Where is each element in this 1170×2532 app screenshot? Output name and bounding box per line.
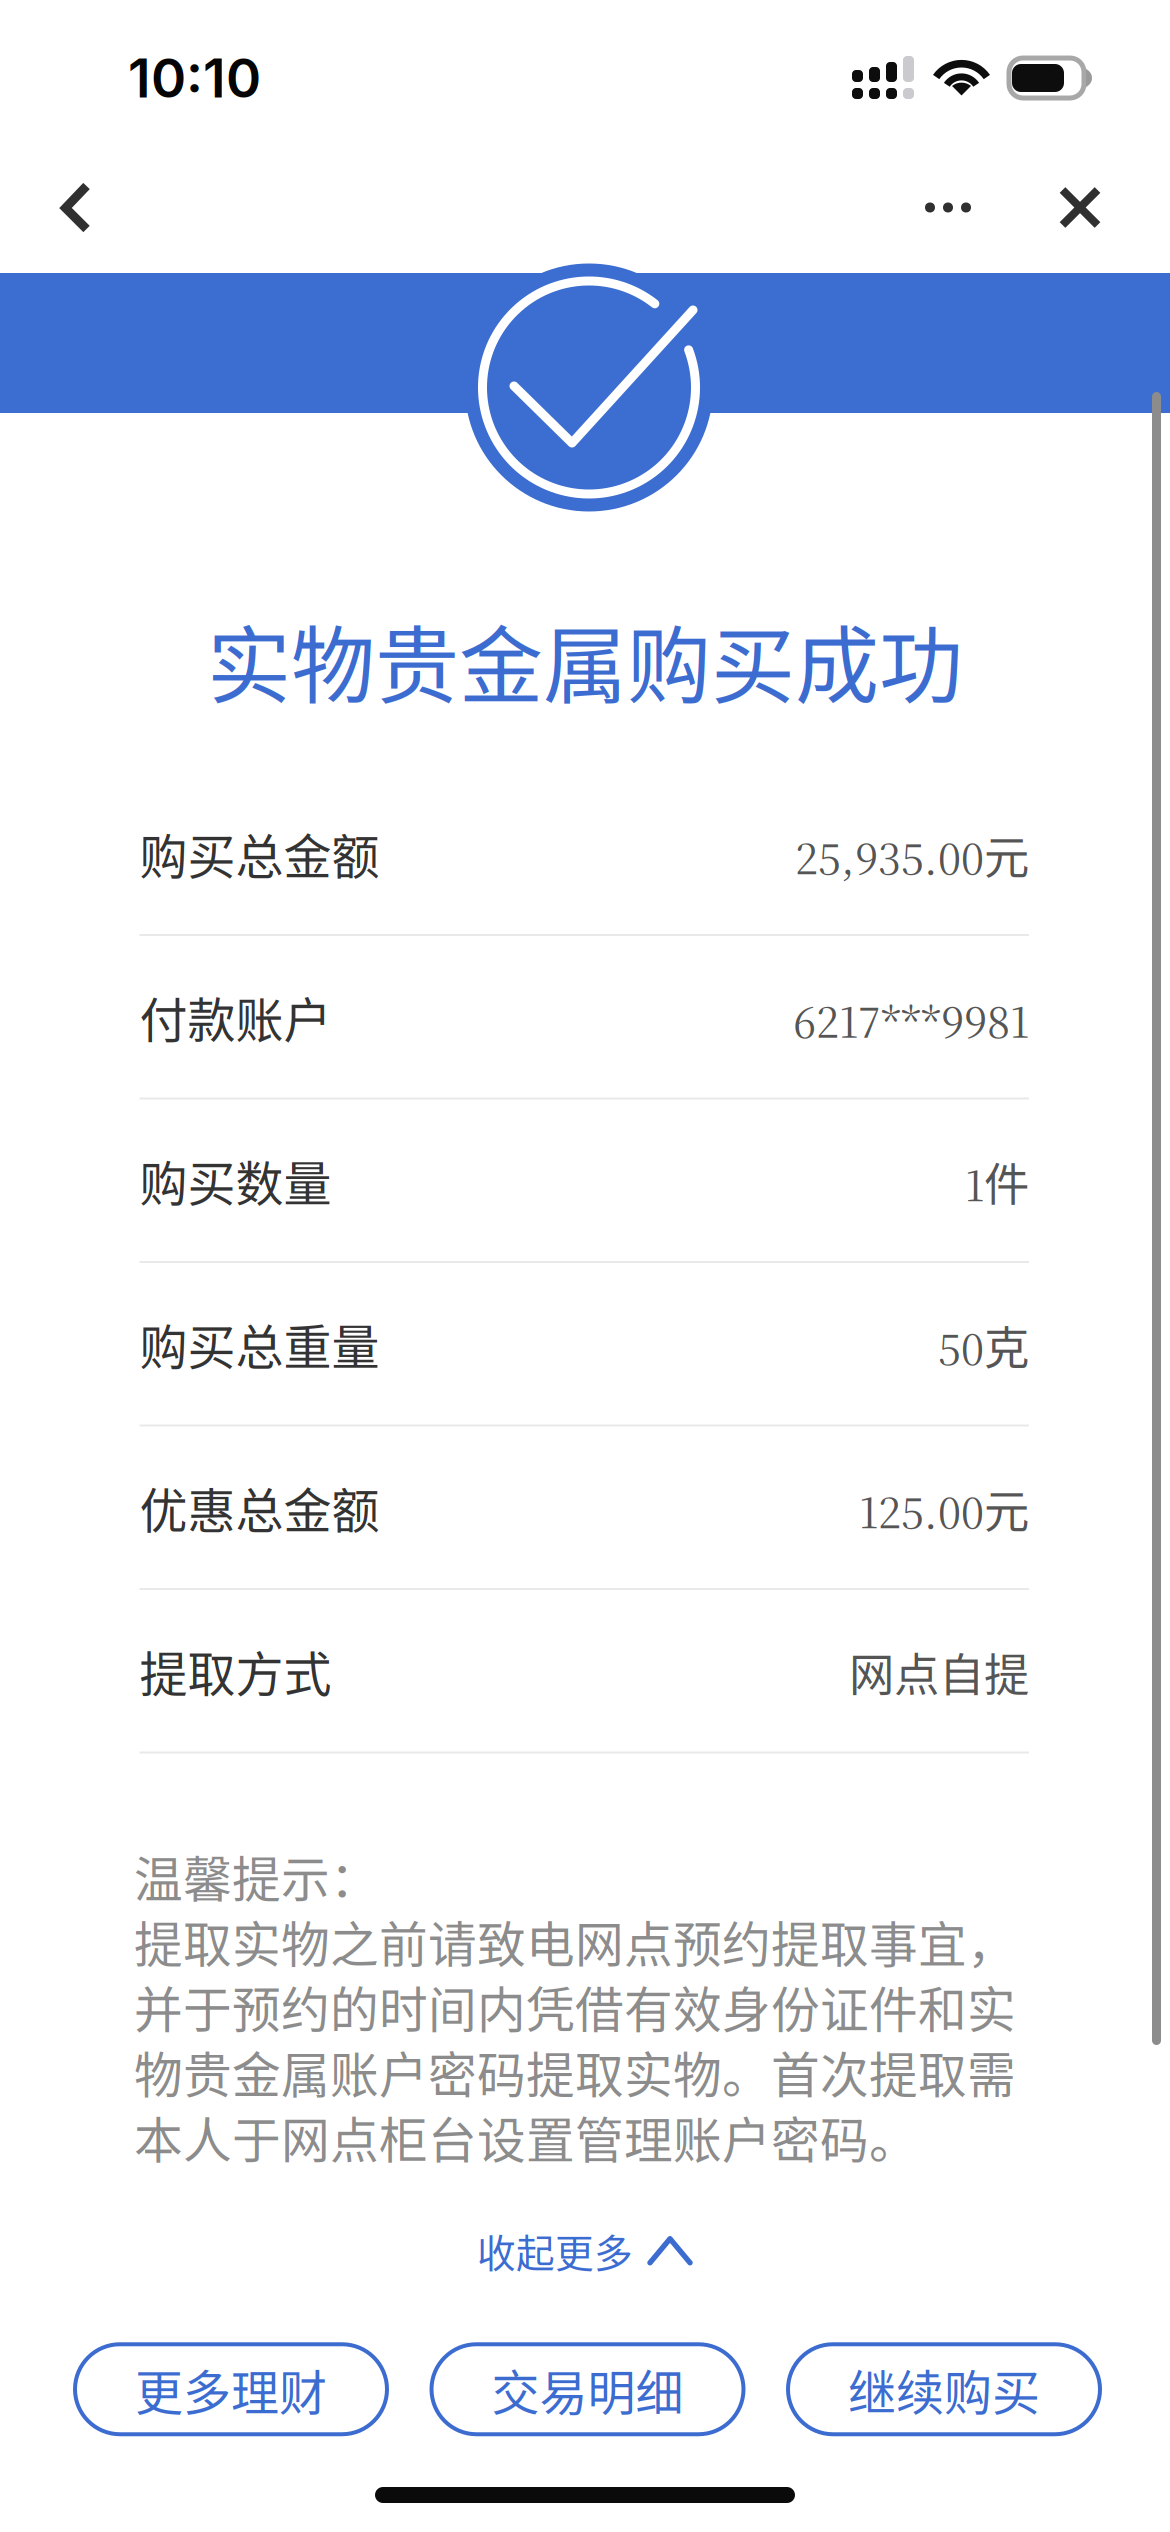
- staticText: 提取实物之前请致电网点预约提取事宜，: [134, 1906, 1016, 1977]
- staticText: 10:10: [128, 46, 261, 110]
- staticText: 购买总金额: [139, 818, 379, 888]
- staticText: 1: [965, 1154, 984, 1213]
- staticText: 并于预约的时间内凭借有效身份证件和实: [134, 1971, 1016, 2042]
- staticText: 物贵金属账户密码提取实物。首次提取需: [134, 2037, 1016, 2107]
- button[interactable]: 交易明细: [431, 2344, 743, 2434]
- staticText: 元: [984, 822, 1029, 887]
- staticText: 6217***9981: [793, 990, 1029, 1049]
- staticText: 克: [984, 1312, 1029, 1378]
- staticText: 交易明细: [491, 2354, 683, 2424]
- staticText: 实物贵金属购买成功: [207, 599, 963, 721]
- staticText: 收起更多: [477, 2223, 633, 2279]
- staticText: 25,935.00: [795, 827, 984, 886]
- staticText: 更多理财: [135, 2354, 327, 2424]
- button[interactable]: More options: [893, 150, 1003, 265]
- button[interactable]: 更多理财: [75, 2344, 387, 2434]
- staticText: 付款账户: [139, 982, 331, 1051]
- staticText: 元: [984, 1476, 1029, 1541]
- staticText: 提取方式: [139, 1636, 331, 1705]
- staticText: 件: [984, 1149, 1029, 1214]
- staticText: 优惠总金额: [139, 1472, 379, 1542]
- button[interactable]: 继续购买: [788, 2344, 1100, 2434]
- staticText: 继续购买: [848, 2354, 1040, 2424]
- staticText: 购买数量: [139, 1145, 331, 1215]
- staticText: 本人于网点柜台设置管理账户密码。: [134, 2102, 918, 2172]
- staticText: 温馨提示：: [134, 1841, 379, 1911]
- staticText: 网点自提: [849, 1639, 1029, 1705]
- button[interactable]: 收起更多: [477, 2216, 693, 2286]
- button[interactable]: Back: [21, 150, 131, 265]
- button[interactable]: Close: [1025, 150, 1135, 265]
- staticText: 购买总重量: [139, 1309, 379, 1378]
- staticText: 125.00: [859, 1481, 984, 1540]
- staticText: 50: [938, 1317, 984, 1376]
